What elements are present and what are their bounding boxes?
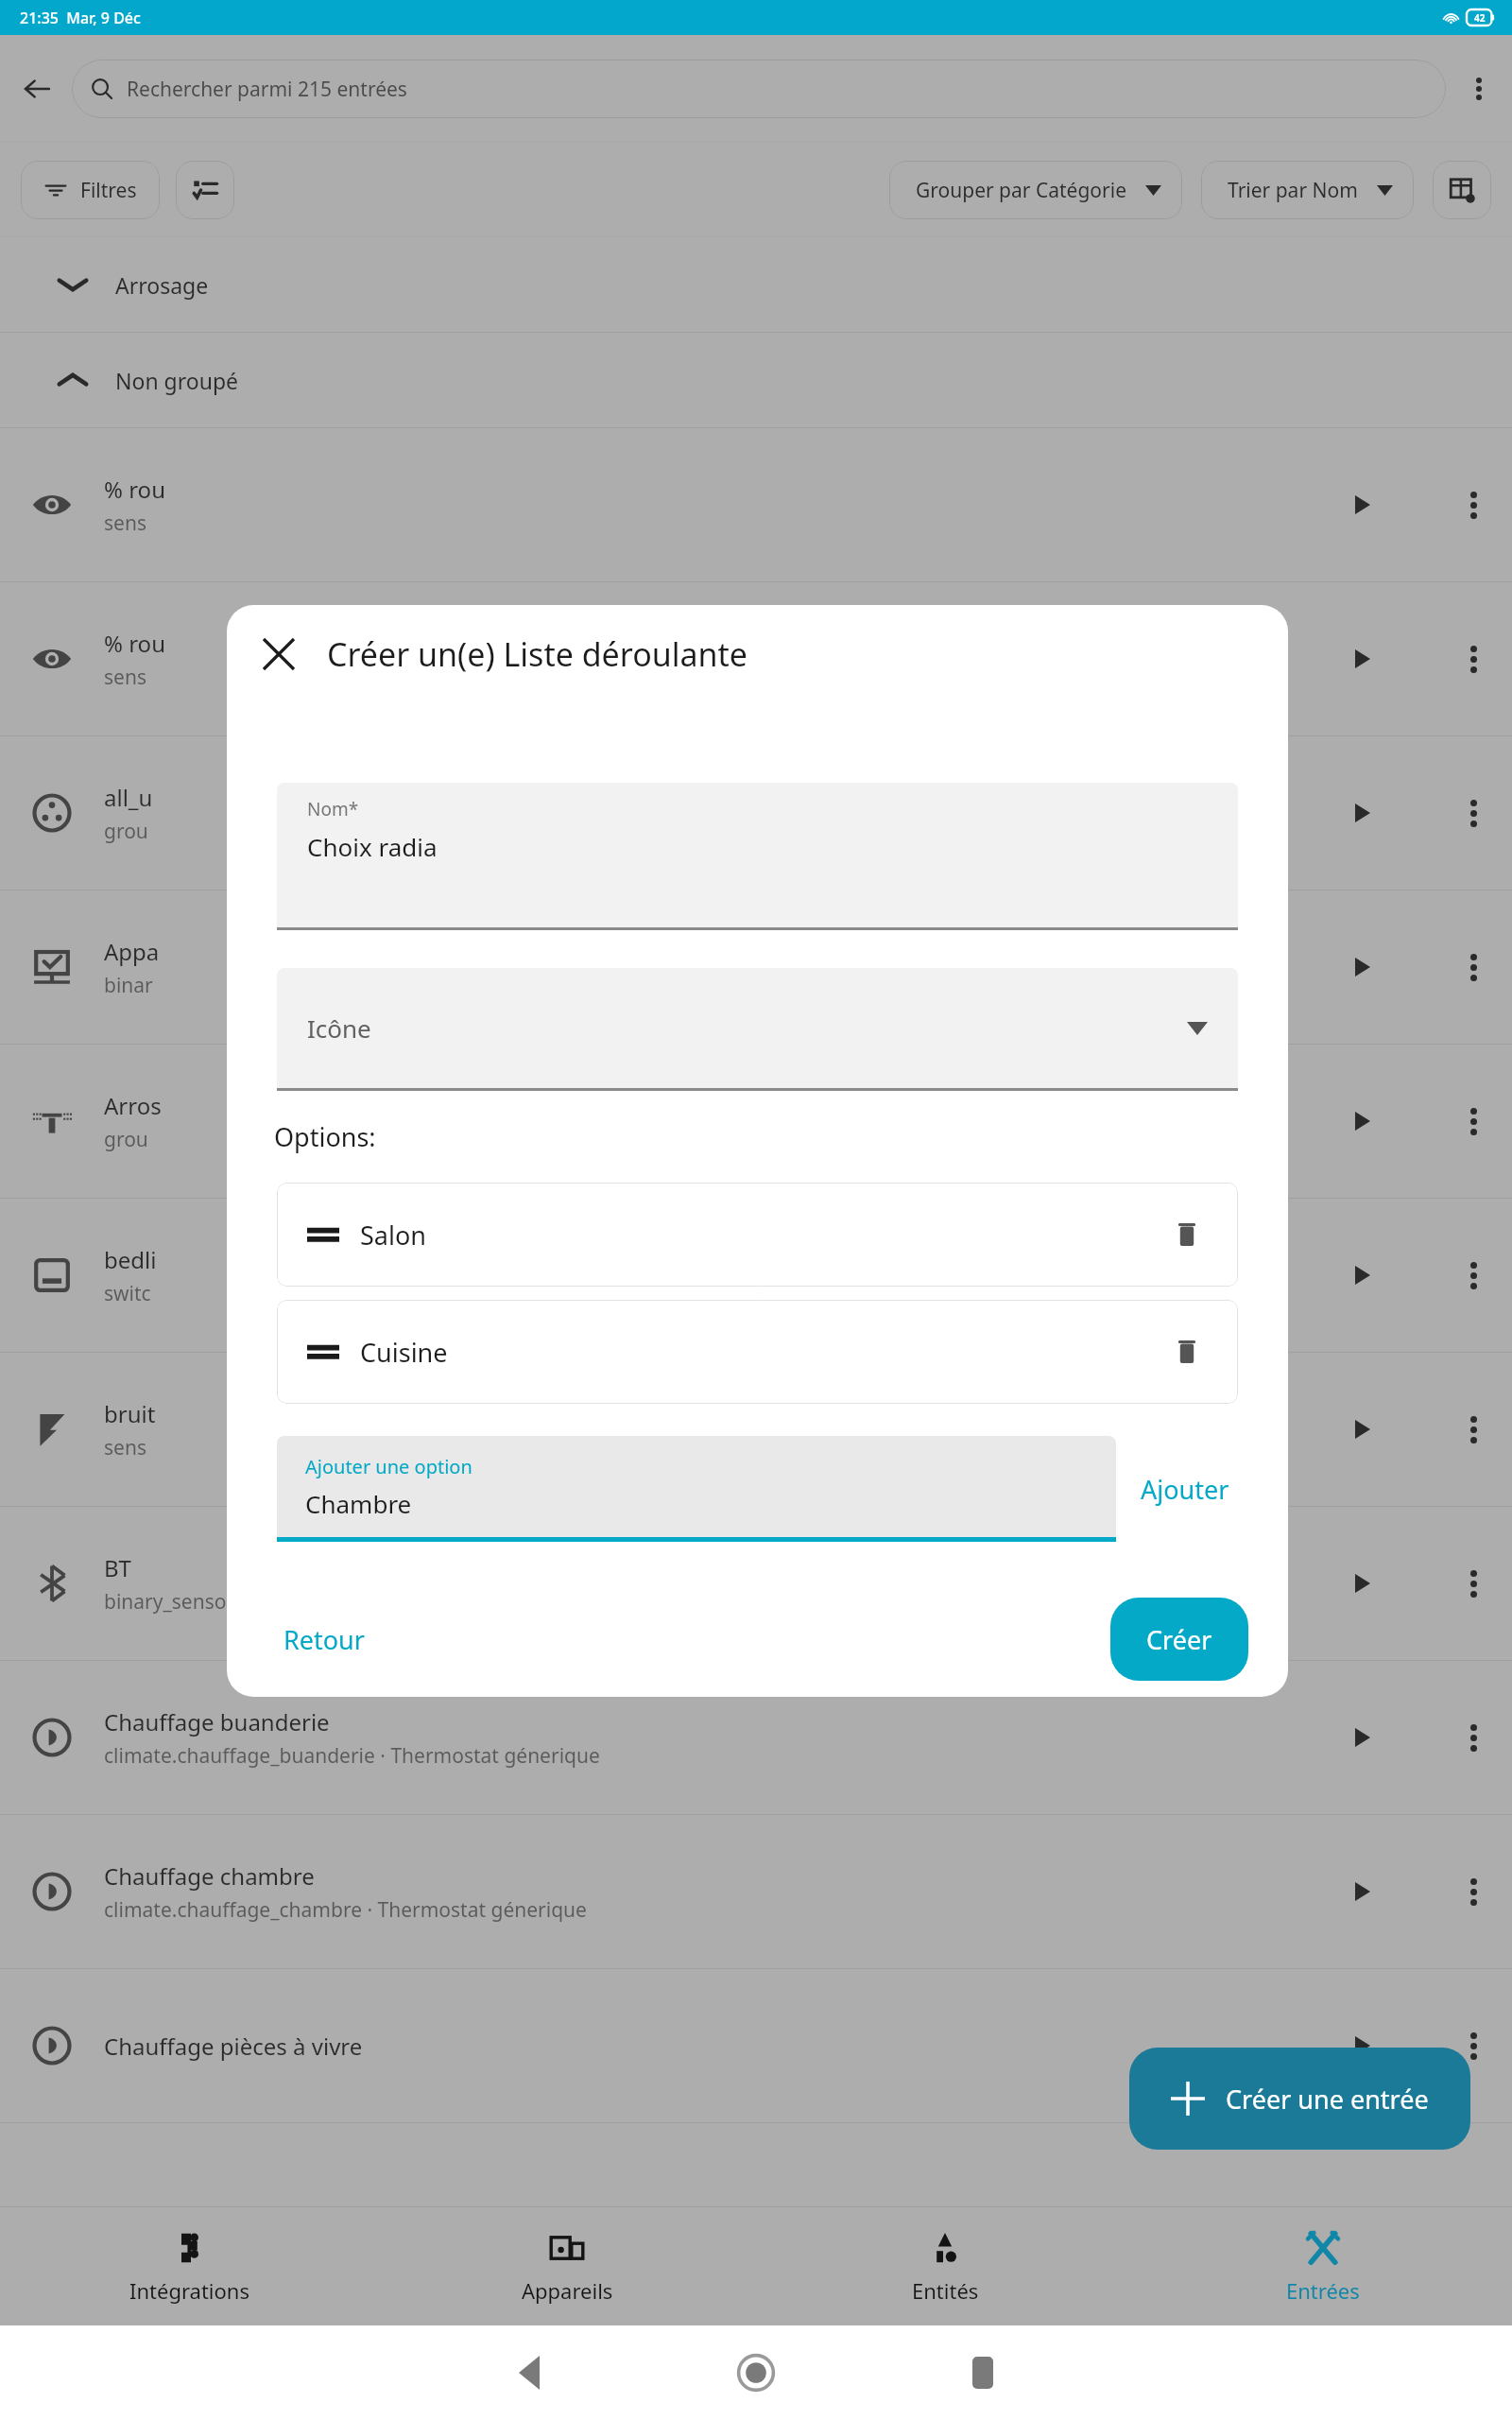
- staticText: Appa: [104, 936, 160, 967]
- button[interactable]: % rou: [0, 428, 1512, 581]
- staticText: sens: [104, 1434, 146, 1461]
- staticText: Entrées: [1286, 2276, 1360, 2305]
- staticText: Filtres: [80, 177, 137, 204]
- button[interactable]: Arrosage: [0, 237, 1512, 332]
- staticText: BT: [104, 1552, 131, 1583]
- staticText: sens: [104, 510, 146, 537]
- button[interactable]: Appareils: [378, 2207, 756, 2325]
- staticText: Intégrations: [129, 2276, 249, 2305]
- staticText: 42: [1474, 11, 1486, 25]
- staticText: bruit: [104, 1398, 156, 1429]
- button[interactable]: bruit: [0, 1353, 1512, 1506]
- staticText: Créer un(e) Liste déroulante: [327, 632, 748, 676]
- staticText: Trier par Nom: [1228, 177, 1358, 204]
- button[interactable]: Colonnes: [1433, 161, 1491, 219]
- staticText: Cuisine: [360, 1335, 448, 1370]
- staticText: all_u: [104, 782, 153, 813]
- staticText: Icône: [307, 1011, 371, 1045]
- button[interactable]: Intégrations: [0, 2207, 378, 2325]
- staticText: Options:: [274, 1119, 376, 1154]
- staticText: Non groupé: [115, 366, 239, 395]
- staticText: Appareils: [522, 2276, 613, 2305]
- button[interactable]: bedli: [0, 1199, 1512, 1352]
- staticText: grou: [104, 818, 148, 845]
- button[interactable]: Options: [1446, 631, 1501, 686]
- button[interactable]: Entrées: [1134, 2207, 1512, 2325]
- staticText: Créer: [1146, 1622, 1212, 1657]
- button[interactable]: Cuisine: [277, 1300, 1238, 1404]
- button[interactable]: Options: [1446, 786, 1501, 840]
- staticText: Entités: [912, 2276, 979, 2305]
- button[interactable]: Supprimer Cuisine: [1160, 1325, 1213, 1378]
- staticText: Grouper par Catégorie: [916, 177, 1126, 204]
- button[interactable]: Créer une entrée: [1129, 2048, 1470, 2150]
- button[interactable]: Retour: [263, 1609, 386, 1670]
- button[interactable]: Icône: [277, 968, 1238, 1091]
- staticText: Nom*: [307, 797, 359, 821]
- staticText: Arros: [104, 1090, 162, 1121]
- button[interactable]: Options: [1446, 1710, 1501, 1765]
- staticText: Chauffage pièces à vivre: [104, 2031, 363, 2062]
- staticText: % rou: [104, 628, 165, 659]
- button[interactable]: Chauffage chambre: [0, 1815, 1512, 1968]
- button[interactable]: % rou: [0, 582, 1512, 735]
- staticText: Retour: [283, 1622, 365, 1657]
- button[interactable]: Entités: [756, 2207, 1134, 2325]
- button[interactable]: Créer: [1110, 1598, 1248, 1681]
- staticText: binar: [104, 972, 153, 999]
- staticText: bedli: [104, 1244, 157, 1275]
- button[interactable]: Ajouter une option: [277, 1436, 1116, 1542]
- button[interactable]: Supprimer Salon: [1160, 1208, 1213, 1261]
- button[interactable]: Options: [1446, 1402, 1501, 1457]
- button[interactable]: Ajouter: [1116, 1459, 1254, 1520]
- button[interactable]: Options: [1446, 1864, 1501, 1919]
- staticText: Ajouter: [1141, 1472, 1229, 1507]
- button[interactable]: Non groupé: [0, 333, 1512, 427]
- staticText: Arrosage: [115, 270, 209, 300]
- button[interactable]: Chauffage buanderie: [0, 1661, 1512, 1814]
- button[interactable]: Grouper par Catégorie: [889, 161, 1182, 219]
- staticText: 21:35 Mar, 9 Déc: [20, 8, 141, 28]
- staticText: Chambre: [305, 1487, 412, 1520]
- button[interactable]: Filtres: [21, 161, 160, 219]
- button[interactable]: Trier par Nom: [1201, 161, 1414, 219]
- button[interactable]: all_u: [0, 736, 1512, 890]
- button[interactable]: Salon: [277, 1183, 1238, 1287]
- staticText: climate.chauffage_buanderie · Thermostat…: [104, 1742, 600, 1770]
- button[interactable]: Nom*: [277, 783, 1238, 930]
- button[interactable]: Chauffage pièces à vivre: [0, 1969, 1512, 2122]
- button[interactable]: Appa: [0, 890, 1512, 1044]
- staticText: Salon: [360, 1218, 426, 1253]
- button[interactable]: Options: [1446, 1556, 1501, 1611]
- staticText: grou: [104, 1126, 148, 1153]
- button[interactable]: Rechercher parmi 215 entrées: [72, 60, 1446, 118]
- staticText: Chauffage chambre: [104, 1860, 315, 1892]
- staticText: % rou: [104, 474, 165, 505]
- staticText: Créer une entrée: [1226, 2082, 1429, 2117]
- button[interactable]: Options: [1446, 1094, 1501, 1149]
- staticText: Chauffage buanderie: [104, 1706, 330, 1737]
- staticText: binary_sensor.bt_stack · Template: [104, 1588, 415, 1616]
- staticText: Ajouter une option: [305, 1454, 472, 1479]
- button[interactable]: Options: [1446, 1248, 1501, 1303]
- button[interactable]: Options: [1446, 940, 1501, 994]
- button[interactable]: Fermer: [251, 627, 306, 682]
- staticText: sens: [104, 664, 146, 691]
- staticText: climate.chauffage_chambre · Thermostat g…: [104, 1896, 587, 1924]
- button[interactable]: Arros: [0, 1045, 1512, 1198]
- button[interactable]: Retour: [8, 60, 66, 118]
- button[interactable]: Sélection: [176, 161, 234, 219]
- staticText: Choix radia: [307, 830, 438, 863]
- button[interactable]: BT: [0, 1507, 1512, 1660]
- staticText: switc: [104, 1280, 151, 1307]
- button[interactable]: Options: [1446, 2018, 1501, 2073]
- button[interactable]: Options: [1446, 477, 1501, 532]
- button[interactable]: Plus d'options: [1452, 61, 1506, 116]
- staticText: Rechercher parmi 215 entrées: [127, 76, 407, 103]
